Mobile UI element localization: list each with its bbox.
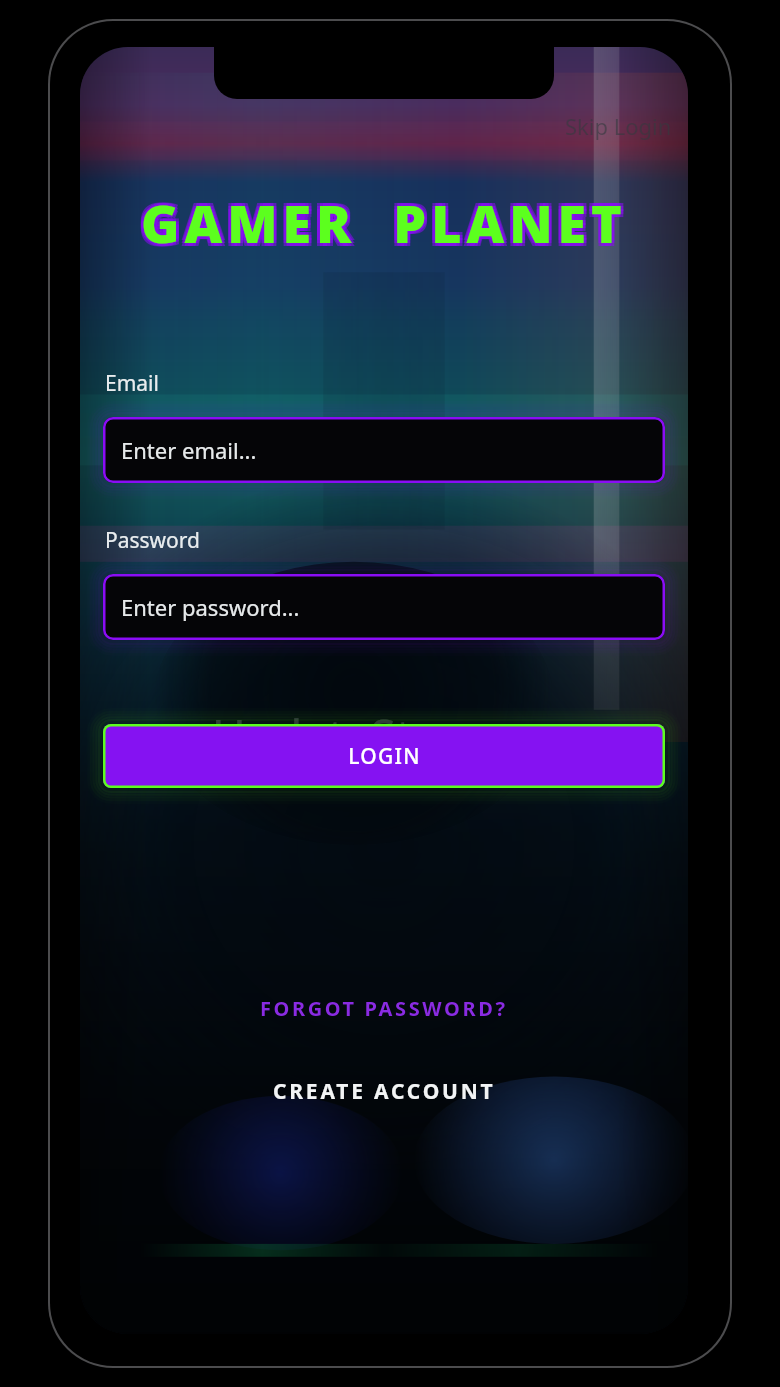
staticText: GAMER PLANET — [141, 190, 627, 261]
staticText: GAMER PLANET — [144, 187, 630, 258]
staticText: Email — [105, 369, 159, 398]
staticText: GAMER PLANET — [138, 187, 624, 258]
button[interactable]: Enter email... — [103, 417, 665, 483]
staticText: GAMER PLANET — [138, 184, 624, 255]
staticText: Skip Login — [565, 111, 672, 141]
button[interactable]: FORGOT PASSWORD? — [246, 987, 522, 1030]
staticText: GAMER PLANET — [141, 184, 627, 255]
button[interactable]: Skip Login — [559, 109, 678, 143]
staticText: GAMER PLANET — [144, 190, 630, 261]
button[interactable]: LOGIN — [103, 724, 665, 788]
staticText: CREATE ACCOUNT — [273, 1077, 496, 1106]
staticText: Password — [105, 526, 200, 555]
staticText: Enter email... — [121, 435, 257, 465]
staticText: UpdateStar.com — [212, 704, 556, 767]
staticText: LOGIN — [348, 742, 421, 771]
other: Camera notch — [214, 47, 554, 99]
button[interactable]: CREATE ACCOUNT — [259, 1069, 510, 1114]
button[interactable]: Enter password... — [103, 574, 665, 640]
staticText: GAMER PLANET — [141, 187, 627, 258]
staticText: GAMER PLANET — [138, 190, 624, 261]
staticText: Enter password... — [121, 592, 300, 622]
staticText: FORGOT PASSWORD? — [260, 995, 508, 1022]
staticText: GAMER PLANET — [144, 184, 630, 255]
